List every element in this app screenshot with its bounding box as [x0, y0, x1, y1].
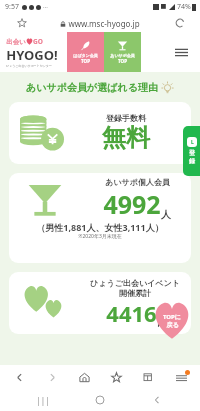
button[interactable]: あいサポ会員	[104, 32, 141, 72]
staticText: 回	[157, 318, 165, 328]
button[interactable]: Home	[86, 389, 114, 411]
staticText: HYOGO!	[6, 46, 58, 64]
staticText: ひょうご出会いサポートセンター	[6, 64, 52, 68]
button[interactable]: Menu	[171, 42, 191, 62]
staticText: www.msc-hyogo.jp	[68, 18, 140, 29]
button[interactable]: LINE 登録	[183, 126, 200, 176]
staticText: 人	[161, 208, 171, 221]
staticText: TOP	[118, 58, 127, 64]
staticText: あいサポ個人会員	[105, 177, 170, 187]
staticText: はばタン会員	[73, 53, 98, 58]
staticText: 出会い	[6, 38, 26, 46]
staticText: 開催累計	[119, 288, 151, 298]
button[interactable]: Back	[143, 389, 171, 411]
button[interactable]: 登録手数料	[9, 102, 191, 164]
staticText: 4416	[106, 298, 157, 328]
staticText: ひょうご出会いイベント	[90, 278, 180, 288]
staticText: あいサポ会員	[110, 53, 135, 58]
button[interactable]: Forward	[39, 365, 65, 389]
button[interactable]: ひょうご出会いイベント	[9, 272, 191, 334]
staticText: あいサポ会員が選ばれる理由	[26, 81, 158, 94]
button[interactable]: Home	[71, 365, 97, 389]
button[interactable]: Back	[6, 365, 32, 389]
staticText: 登	[189, 149, 195, 157]
staticText: |||	[36, 395, 50, 406]
staticText: ※2020年3月末現在	[78, 233, 122, 240]
button[interactable]: Recents	[29, 389, 57, 411]
button[interactable]: Bookmark	[14, 15, 30, 31]
staticText: 戻る	[166, 321, 179, 329]
button[interactable]: 出会い	[6, 37, 58, 68]
button[interactable]: More options	[168, 365, 194, 389]
staticText: ···	[43, 3, 48, 11]
staticText: 4992	[103, 187, 161, 221]
button[interactable]: あいサポ個人会員	[9, 173, 191, 263]
staticText: （男性1,881人、女性3,111人）	[36, 221, 164, 233]
staticText: 登録手数料	[106, 113, 146, 123]
staticText: 74%	[177, 2, 191, 12]
staticText: GO	[33, 37, 43, 46]
staticText: 録	[189, 157, 195, 165]
button[interactable]: Tabs	[135, 365, 161, 389]
button[interactable]: Reload	[172, 15, 188, 31]
button[interactable]: TOPに戻る	[152, 300, 192, 340]
staticText: TOPに	[163, 313, 181, 321]
staticText: TOP	[81, 58, 90, 64]
button[interactable]: Bookmarks	[103, 365, 129, 389]
staticText: 9:57	[5, 2, 19, 12]
staticText: 無料	[102, 123, 150, 153]
button[interactable]: はばタン会員	[67, 32, 104, 72]
staticText: L	[191, 139, 194, 146]
